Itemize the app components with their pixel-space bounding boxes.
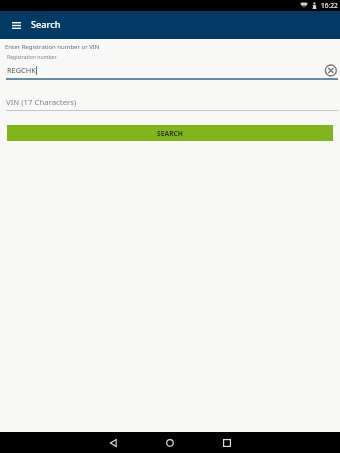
- button[interactable]: Recent apps: [217, 432, 237, 453]
- button[interactable]: SEARCH: [7, 125, 333, 141]
- staticText: Search: [31, 18, 61, 31]
- button[interactable]: VIN (17 Characters): [6, 94, 338, 109]
- button[interactable]: REGCHK: [6, 62, 316, 79]
- staticText: Registration number: [7, 54, 57, 61]
- staticText: 16:22: [321, 1, 338, 10]
- button[interactable]: Back: [103, 432, 123, 453]
- button[interactable]: Clear text: [322, 62, 339, 79]
- staticText: REGCHK: [7, 65, 36, 75]
- staticText: SEARCH: [157, 129, 183, 138]
- staticText: VIN (17 Characters): [6, 97, 77, 108]
- button[interactable]: Menu: [6, 15, 26, 35]
- staticText: Enter Registration number or VIN: [5, 43, 100, 51]
- button[interactable]: Home: [160, 432, 180, 453]
